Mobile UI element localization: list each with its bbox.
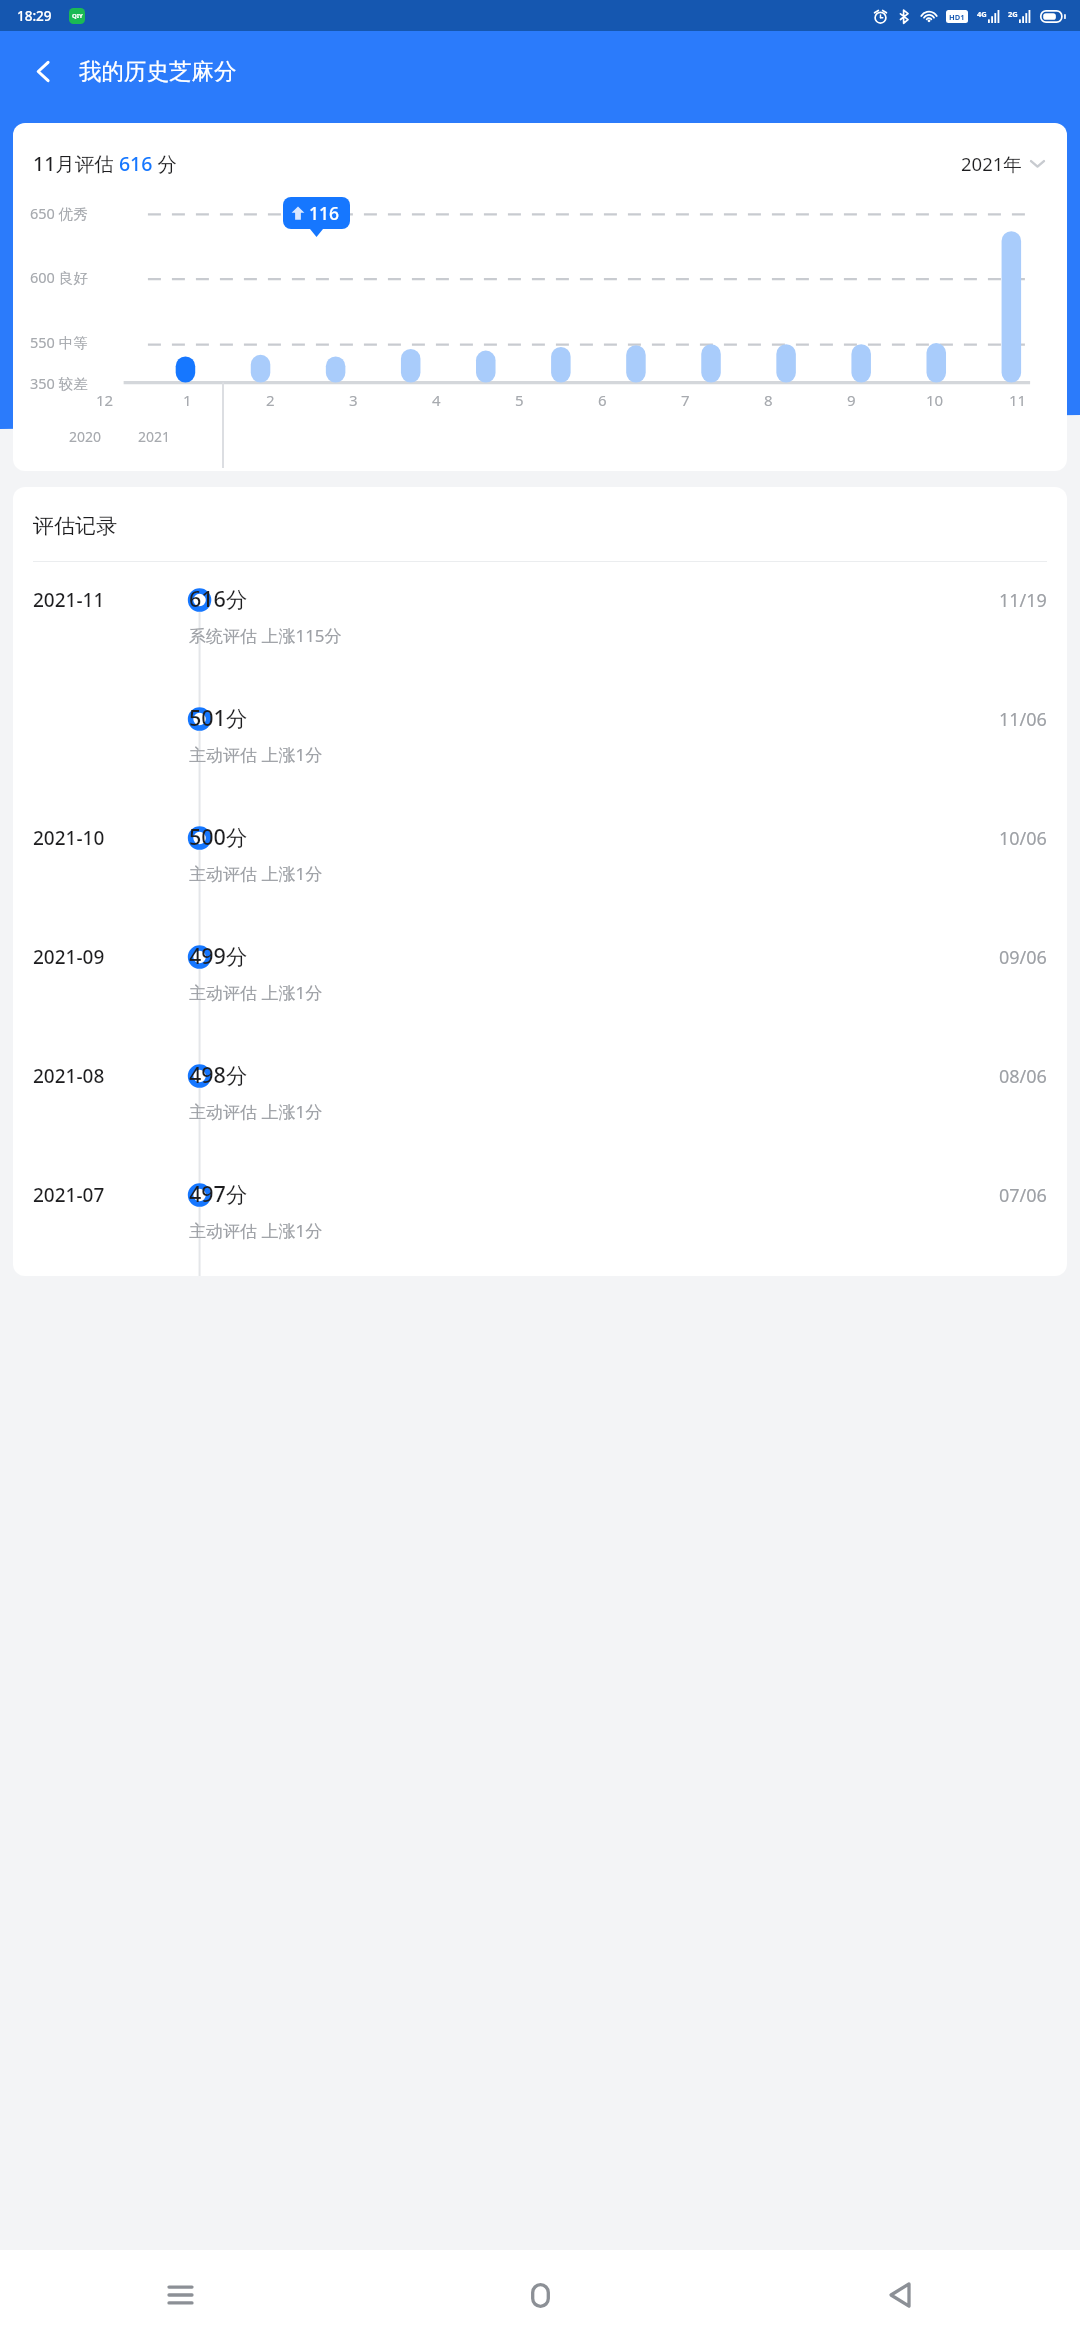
staticText: 主动评估 上涨1分: [189, 743, 323, 766]
staticText: 2021-09: [33, 944, 105, 970]
staticText: 3: [349, 390, 358, 410]
staticText: 499分: [189, 941, 248, 970]
staticText: 12: [96, 390, 114, 410]
staticText: 4: [432, 390, 441, 410]
button[interactable]: Recent apps: [0, 2250, 360, 2340]
staticText: 2021: [138, 427, 171, 446]
staticText: 5: [515, 390, 524, 410]
staticText: 550 中等: [30, 332, 88, 352]
staticText: 6: [598, 390, 607, 410]
staticText: 2G: [1008, 9, 1018, 19]
button[interactable]: 2021-08: [13, 1038, 1067, 1157]
staticText: 系统评估 上涨115分: [189, 624, 342, 647]
staticText: 主动评估 上涨1分: [189, 1100, 323, 1123]
staticText: 2021-11: [33, 587, 105, 613]
staticText: 1: [183, 390, 192, 410]
staticText: 2: [266, 390, 275, 410]
staticText: QIY: [72, 12, 83, 20]
button[interactable]: Back: [18, 46, 68, 96]
staticText: 2020: [69, 427, 102, 446]
staticText: 498分: [189, 1060, 248, 1089]
staticText: 600 良好: [30, 267, 88, 287]
button[interactable]: Back: [720, 2250, 1080, 2340]
staticText: 07/06: [999, 1183, 1047, 1208]
staticText: 09/06: [999, 945, 1047, 970]
staticText: HD1: [949, 12, 965, 22]
staticText: 501分: [189, 703, 248, 732]
staticText: 9: [847, 390, 856, 410]
staticText: 2021-10: [33, 825, 105, 851]
staticText: 7: [681, 390, 690, 410]
staticText: 116: [309, 201, 340, 225]
staticText: 650 优秀: [30, 203, 88, 223]
staticText: 350 较差: [30, 373, 88, 393]
staticText: 11/19: [999, 588, 1047, 613]
button[interactable]: 2021-07: [13, 1157, 1067, 1276]
staticText: 11月评估 616 分: [33, 150, 177, 177]
staticText: 11: [1009, 390, 1027, 410]
staticText: 评估记录: [33, 513, 117, 539]
staticText: 4G: [977, 9, 987, 19]
staticText: 我的历史芝麻分: [79, 57, 237, 85]
staticText: 2021-07: [33, 1182, 105, 1208]
button[interactable]: 501分: [13, 681, 1067, 800]
staticText: 主动评估 上涨1分: [189, 862, 323, 885]
staticText: 主动评估 上涨1分: [189, 1219, 323, 1242]
staticText: 616分: [189, 584, 248, 613]
staticText: 08/06: [999, 1064, 1047, 1089]
staticText: 500分: [189, 822, 248, 851]
button[interactable]: 2021年: [956, 146, 1051, 181]
staticText: 11/06: [999, 707, 1047, 732]
button[interactable]: 2021-09: [13, 919, 1067, 1038]
button[interactable]: Home: [360, 2250, 720, 2340]
staticText: 497分: [189, 1179, 248, 1208]
button[interactable]: 2021-11: [13, 562, 1067, 681]
staticText: 2021-08: [33, 1063, 105, 1089]
button[interactable]: 2021-10: [13, 800, 1067, 919]
staticText: 8: [764, 390, 773, 410]
staticText: 18:29: [17, 7, 52, 25]
staticText: 10: [926, 390, 944, 410]
staticText: 主动评估 上涨1分: [189, 981, 323, 1004]
staticText: 2021年: [961, 151, 1022, 176]
staticText: 10/06: [999, 826, 1047, 851]
